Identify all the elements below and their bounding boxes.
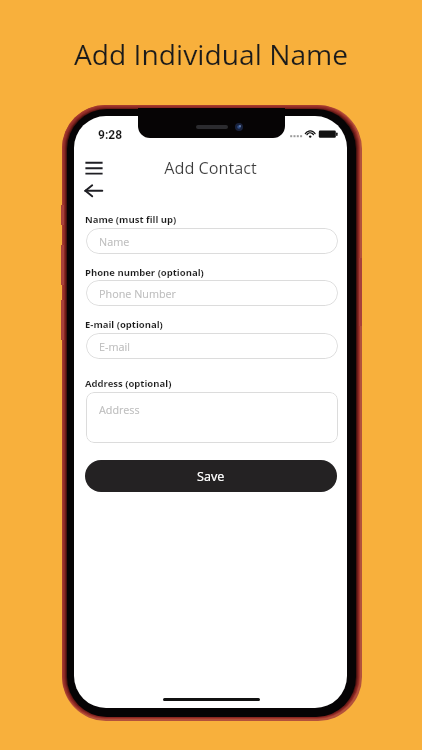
button[interactable]: Address: [86, 392, 338, 443]
staticText: E-mail: [99, 339, 130, 354]
staticText: Add Individual Name: [0, 35, 422, 73]
staticText: Add Contact: [74, 157, 347, 179]
staticText: Address: [99, 402, 140, 417]
staticText: Phone Number: [99, 286, 177, 301]
staticText: Phone number (optional): [85, 266, 204, 279]
button[interactable]: E-mail: [86, 333, 338, 359]
button[interactable]: Back: [80, 179, 108, 201]
staticText: Name: [99, 234, 130, 249]
button[interactable]: Phone Number: [86, 280, 338, 306]
staticText: Save: [197, 468, 225, 485]
button[interactable]: Save: [85, 460, 337, 492]
button[interactable]: Menu: [80, 154, 108, 176]
staticText: Address (optional): [85, 377, 172, 390]
staticText: E-mail (optional): [85, 318, 163, 331]
staticText: 9:28: [98, 128, 123, 142]
staticText: Name (must fill up): [85, 213, 177, 226]
button[interactable]: Name: [86, 228, 338, 254]
